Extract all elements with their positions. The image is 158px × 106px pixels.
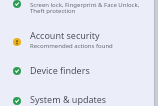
staticText: Account security [30, 29, 100, 41]
staticText: System & updates [30, 93, 107, 105]
button[interactable]: Device unlock: secure [0, 0, 158, 18]
staticText: Device finders [30, 64, 90, 76]
other: Account security: action needed [13, 38, 21, 46]
other: Device finders: secure [13, 67, 21, 75]
button[interactable]: System & updates: secure [0, 86, 158, 106]
button[interactable]: Device finders: secure [0, 56, 158, 86]
other: Device unlock: secure [13, 0, 21, 8]
button[interactable]: Account security: action needed [0, 27, 158, 56]
staticText: Screen lock, Fingerprint & Face Unlock, [30, 1, 140, 9]
staticText: Theft protection [30, 7, 76, 15]
staticText: Recommended actions found [30, 42, 113, 50]
other: System & updates: secure [13, 97, 21, 105]
